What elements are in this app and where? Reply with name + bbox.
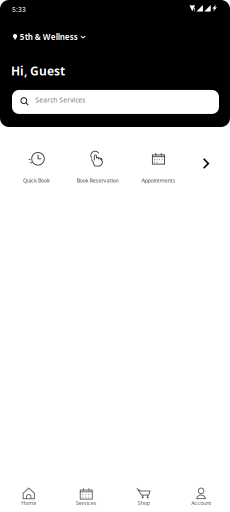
staticText: Account bbox=[191, 499, 211, 506]
button[interactable]: Appointments bbox=[128, 152, 189, 184]
button[interactable]: Book Reservation bbox=[67, 152, 128, 184]
staticText: Quick Book bbox=[23, 177, 50, 184]
staticText: Services bbox=[76, 499, 97, 506]
button[interactable]: More quick actions bbox=[196, 152, 216, 184]
staticText: Hi, Guest bbox=[11, 63, 65, 79]
button[interactable]: Services bbox=[57, 487, 115, 506]
button[interactable]: Home bbox=[0, 487, 57, 506]
staticText: Book Reservation bbox=[76, 177, 118, 184]
button[interactable]: Account bbox=[172, 487, 230, 506]
staticText: Home bbox=[21, 499, 36, 506]
staticText: Shop bbox=[138, 499, 150, 506]
button[interactable]: Quick Book bbox=[6, 152, 67, 184]
staticText: 5:33 bbox=[12, 5, 26, 14]
button[interactable]: 5th & Wellness bbox=[0, 33, 86, 41]
button[interactable]: Shop bbox=[115, 487, 172, 506]
staticText: 5th & Wellness bbox=[20, 32, 78, 42]
button[interactable]: Search Services bbox=[0, 90, 230, 114]
staticText: Search Services bbox=[35, 95, 85, 104]
staticText: Appointments bbox=[141, 177, 175, 184]
